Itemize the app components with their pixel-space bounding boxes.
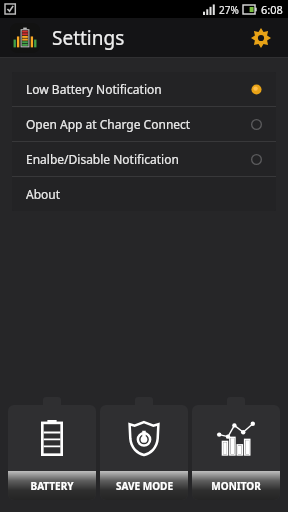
button[interactable]: Settings — [244, 21, 278, 55]
staticText: BATTERY — [30, 479, 74, 493]
button[interactable]: SAVE MODE — [100, 397, 188, 500]
staticText: Low Battery Notification — [26, 81, 162, 97]
staticText: 27% — [219, 3, 239, 17]
button[interactable]: About — [12, 177, 276, 211]
staticText: About — [26, 186, 61, 202]
staticText: SAVE MODE — [116, 479, 173, 493]
staticText: Open App at Charge Connect — [26, 116, 191, 132]
button[interactable]: BATTERY — [8, 397, 96, 500]
button[interactable]: Open App at Charge Connect — [12, 107, 276, 141]
button[interactable]: MONITOR — [192, 397, 280, 500]
button[interactable]: Enalbe/Disable Notification — [12, 142, 276, 176]
staticText: Settings — [52, 25, 125, 51]
staticText: Enalbe/Disable Notification — [26, 151, 179, 167]
button[interactable]: Low Battery Notification — [12, 72, 276, 106]
staticText: MONITOR — [211, 479, 261, 493]
staticText: 6:08 — [261, 2, 283, 17]
